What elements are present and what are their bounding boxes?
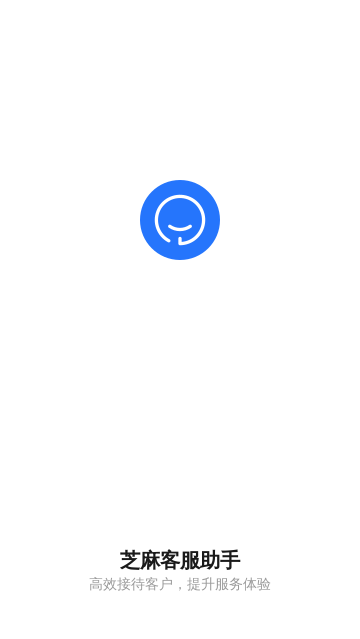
staticText: 高效接待客户，提升服务体验 [89,575,271,593]
staticText: 芝麻客服助手 [120,548,240,573]
